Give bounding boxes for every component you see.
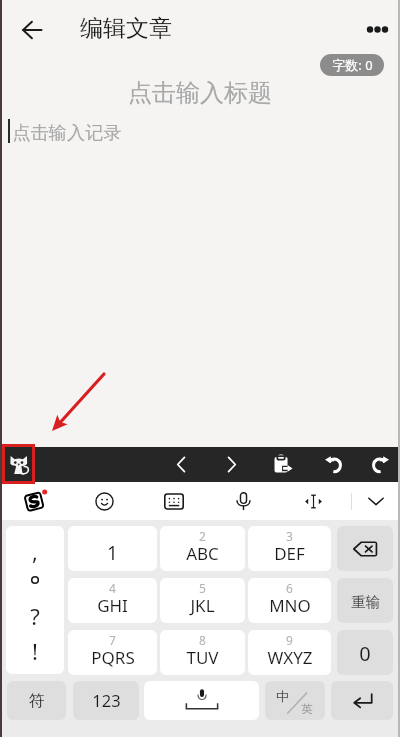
staticText: TUV: [186, 646, 219, 669]
staticText: GHI: [97, 594, 128, 617]
staticText: DEF: [274, 542, 305, 565]
button[interactable]: 符: [7, 681, 66, 720]
button[interactable]: Emoji: [82, 482, 126, 520]
staticText: 9: [286, 632, 293, 648]
button[interactable]: 4: [68, 578, 157, 623]
button[interactable]: 8: [160, 630, 245, 675]
button[interactable]: 字数: 0: [320, 54, 384, 76]
staticText: 3: [286, 528, 293, 544]
staticText: ,: [32, 536, 38, 566]
button[interactable]: Undo: [310, 447, 354, 482]
staticText: 2: [199, 528, 206, 544]
staticText: 123: [92, 689, 121, 711]
staticText: 编辑文章: [80, 14, 172, 43]
button[interactable]: Space: [144, 681, 259, 720]
button[interactable]: 123: [73, 681, 139, 720]
button[interactable]: 7: [68, 630, 157, 675]
button[interactable]: Sogou cat: [3, 447, 34, 482]
staticText: 点击输入记录: [12, 121, 122, 144]
button[interactable]: Keyboard layout: [152, 482, 196, 520]
staticText: 5: [199, 580, 206, 596]
button[interactable]: 0: [337, 630, 393, 675]
button[interactable]: 中: [265, 681, 325, 720]
button[interactable]: Next: [209, 447, 253, 482]
staticText: 4: [109, 580, 116, 596]
button[interactable]: 3: [248, 526, 331, 571]
button[interactable]: 6: [248, 578, 331, 623]
staticText: JKL: [190, 594, 215, 617]
button[interactable]: Back: [12, 8, 56, 52]
button[interactable]: 9: [248, 630, 331, 675]
staticText: 1: [107, 540, 118, 566]
button[interactable]: Backspace: [337, 526, 393, 571]
button[interactable]: More options: [357, 9, 397, 49]
staticText: 0: [359, 640, 371, 667]
button[interactable]: Hide keyboard: [354, 482, 398, 520]
staticText: 重输: [351, 593, 380, 611]
staticText: MNO: [269, 594, 311, 617]
button[interactable]: Previous: [159, 447, 203, 482]
button[interactable]: Enter: [331, 681, 393, 720]
button[interactable]: 重输: [337, 578, 393, 623]
staticText: ?: [30, 601, 40, 631]
button[interactable]: Punctuation: [6, 526, 64, 674]
staticText: WXYZ: [267, 646, 313, 669]
staticText: ABC: [186, 542, 219, 565]
button[interactable]: Move cursor: [291, 482, 335, 520]
staticText: PQRS: [91, 646, 135, 669]
button[interactable]: Sogou input: [13, 482, 57, 520]
staticText: 7: [109, 632, 116, 648]
button[interactable]: Paste: [260, 447, 304, 482]
staticText: 8: [199, 632, 206, 648]
staticText: 符: [29, 691, 45, 711]
staticText: 6: [286, 580, 293, 596]
staticText: 字数: 0: [332, 56, 373, 74]
button[interactable]: Voice input: [221, 482, 265, 520]
button[interactable]: 1: [68, 526, 157, 571]
staticText: 点击输入标题: [128, 78, 272, 108]
staticText: 英: [301, 702, 313, 716]
staticText: 中: [276, 688, 289, 704]
button[interactable]: 2: [160, 526, 245, 571]
staticText: !: [32, 636, 38, 666]
button[interactable]: Redo: [359, 447, 400, 482]
button[interactable]: 5: [160, 578, 245, 623]
